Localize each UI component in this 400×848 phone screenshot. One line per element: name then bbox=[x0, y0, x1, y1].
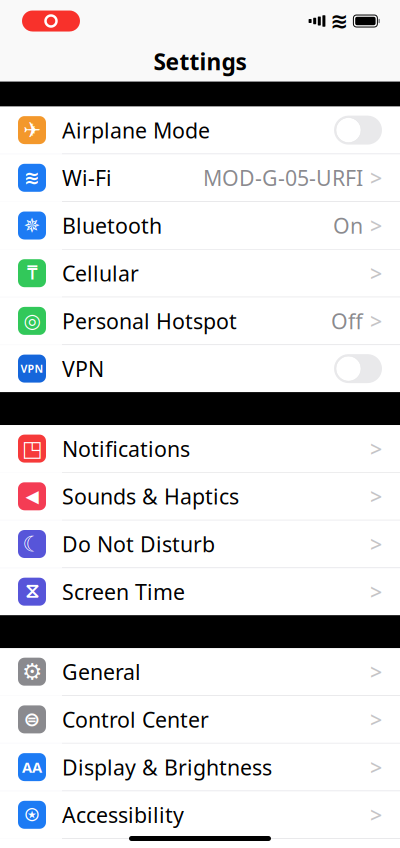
button[interactable]: ⧖ bbox=[0, 568, 400, 615]
button[interactable]: ⍟ bbox=[0, 791, 400, 838]
button[interactable]: AA bbox=[0, 744, 400, 791]
button[interactable]: ⚙ bbox=[0, 648, 400, 695]
staticText: ⊜ bbox=[23, 708, 40, 731]
staticText: ⧖ bbox=[25, 582, 39, 601]
button[interactable]: ⍑ bbox=[0, 250, 400, 297]
staticText: > bbox=[370, 657, 382, 686]
button[interactable]: ◳ bbox=[0, 425, 400, 472]
staticText: > bbox=[370, 753, 382, 781]
staticText: Wi-Fi bbox=[62, 164, 112, 192]
staticText: ⍟ bbox=[25, 803, 38, 827]
staticText: VPN bbox=[20, 361, 43, 376]
staticText: ✈ bbox=[23, 118, 41, 142]
staticText: Sounds & Haptics bbox=[62, 482, 239, 510]
staticText: On bbox=[333, 211, 363, 240]
staticText: Screen Time bbox=[62, 577, 185, 606]
staticText: ⍑ bbox=[26, 263, 37, 284]
staticText: Accessibility bbox=[62, 801, 184, 829]
staticText: General bbox=[62, 657, 141, 686]
button[interactable]: ◎ bbox=[0, 297, 400, 344]
button[interactable]: ✈ bbox=[0, 107, 400, 154]
staticText: > bbox=[370, 705, 382, 733]
staticText: > bbox=[370, 482, 382, 510]
staticText: MOD-G-05-URFI bbox=[203, 164, 363, 192]
staticText: > bbox=[370, 801, 382, 829]
staticText: Bluetooth bbox=[62, 211, 162, 240]
staticText: > bbox=[370, 164, 382, 192]
staticText: ◎ bbox=[23, 310, 40, 332]
staticText: AA bbox=[22, 757, 42, 777]
staticText: Airplane Mode bbox=[62, 116, 210, 144]
button[interactable]: ☾ bbox=[0, 520, 400, 567]
button[interactable]: ✾ bbox=[0, 839, 400, 848]
staticText: Settings bbox=[153, 46, 246, 76]
staticText: VPN bbox=[62, 354, 104, 383]
staticText: ⚙ bbox=[22, 659, 42, 684]
staticText: > bbox=[370, 577, 382, 606]
staticText: Cellular bbox=[62, 259, 139, 287]
staticText: ◀ bbox=[25, 486, 38, 506]
staticText: Personal Hotspot bbox=[62, 307, 237, 335]
staticText: ✵ bbox=[23, 214, 40, 237]
staticText: ☾ bbox=[22, 532, 41, 556]
button[interactable]: ✵ bbox=[0, 202, 400, 249]
staticText: > bbox=[370, 307, 382, 335]
staticText: > bbox=[370, 211, 382, 240]
staticText: ≋ bbox=[24, 167, 40, 188]
staticText: Do Not Disturb bbox=[62, 530, 215, 558]
staticText: Notifications bbox=[62, 434, 190, 463]
button[interactable]: ◀ bbox=[0, 473, 400, 520]
staticText: > bbox=[370, 434, 382, 463]
button[interactable]: VPN bbox=[0, 345, 400, 392]
button[interactable]: ≋ bbox=[0, 154, 400, 201]
staticText: Control Center bbox=[62, 705, 209, 733]
staticText: ≋ bbox=[330, 9, 348, 33]
staticText: > bbox=[370, 259, 382, 287]
staticText: Display & Brightness bbox=[62, 753, 272, 781]
staticText: > bbox=[370, 530, 382, 558]
staticText: Off bbox=[331, 307, 363, 335]
button[interactable]: ⊜ bbox=[0, 696, 400, 743]
staticText: ◳ bbox=[22, 436, 42, 461]
